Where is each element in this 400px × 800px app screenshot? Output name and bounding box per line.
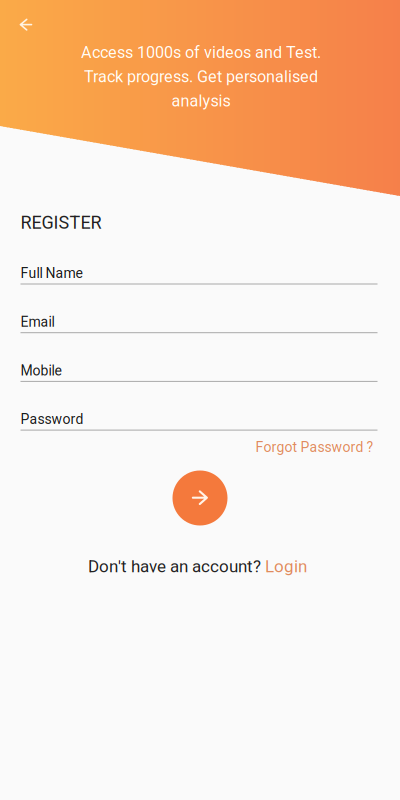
staticText: Track progress. Get personalised — [84, 67, 318, 86]
button[interactable]: Continue — [172, 470, 227, 525]
staticText: REGISTER — [20, 212, 101, 233]
staticText: Email — [20, 314, 54, 330]
staticText: Access 1000s of videos and Test. — [81, 43, 321, 62]
staticText: Mobile — [20, 362, 61, 379]
staticText: analysis — [171, 92, 230, 111]
staticText: Don't have an account? — [88, 557, 265, 576]
staticText: Login — [265, 557, 307, 576]
staticText: Password — [20, 411, 83, 427]
button[interactable]: Login — [265, 557, 307, 576]
staticText: Full Name — [20, 265, 82, 281]
button[interactable]: Back — [7, 6, 45, 44]
staticText: Forgot Password ? — [255, 439, 373, 455]
button[interactable]: Forgot Password ? — [255, 439, 373, 455]
